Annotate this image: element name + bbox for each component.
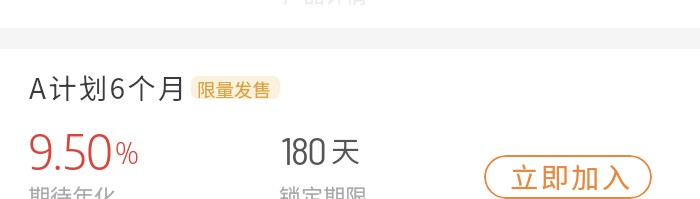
staticText: 限量发售 <box>197 76 272 99</box>
button[interactable]: 立即加入 <box>484 155 652 199</box>
staticText: % <box>115 135 139 170</box>
staticText: 180 <box>281 126 325 173</box>
staticText: 立即加入 <box>510 156 633 197</box>
staticText: 产品详情 <box>283 0 367 9</box>
button[interactable]: 限量发售 <box>197 76 272 99</box>
staticText: 锁定期限 <box>279 179 368 199</box>
staticText: A计划6个月 <box>29 67 189 108</box>
staticText: 天 <box>331 128 361 170</box>
staticText: 9.50 <box>29 121 114 181</box>
staticText: 期待年化 <box>28 179 117 199</box>
